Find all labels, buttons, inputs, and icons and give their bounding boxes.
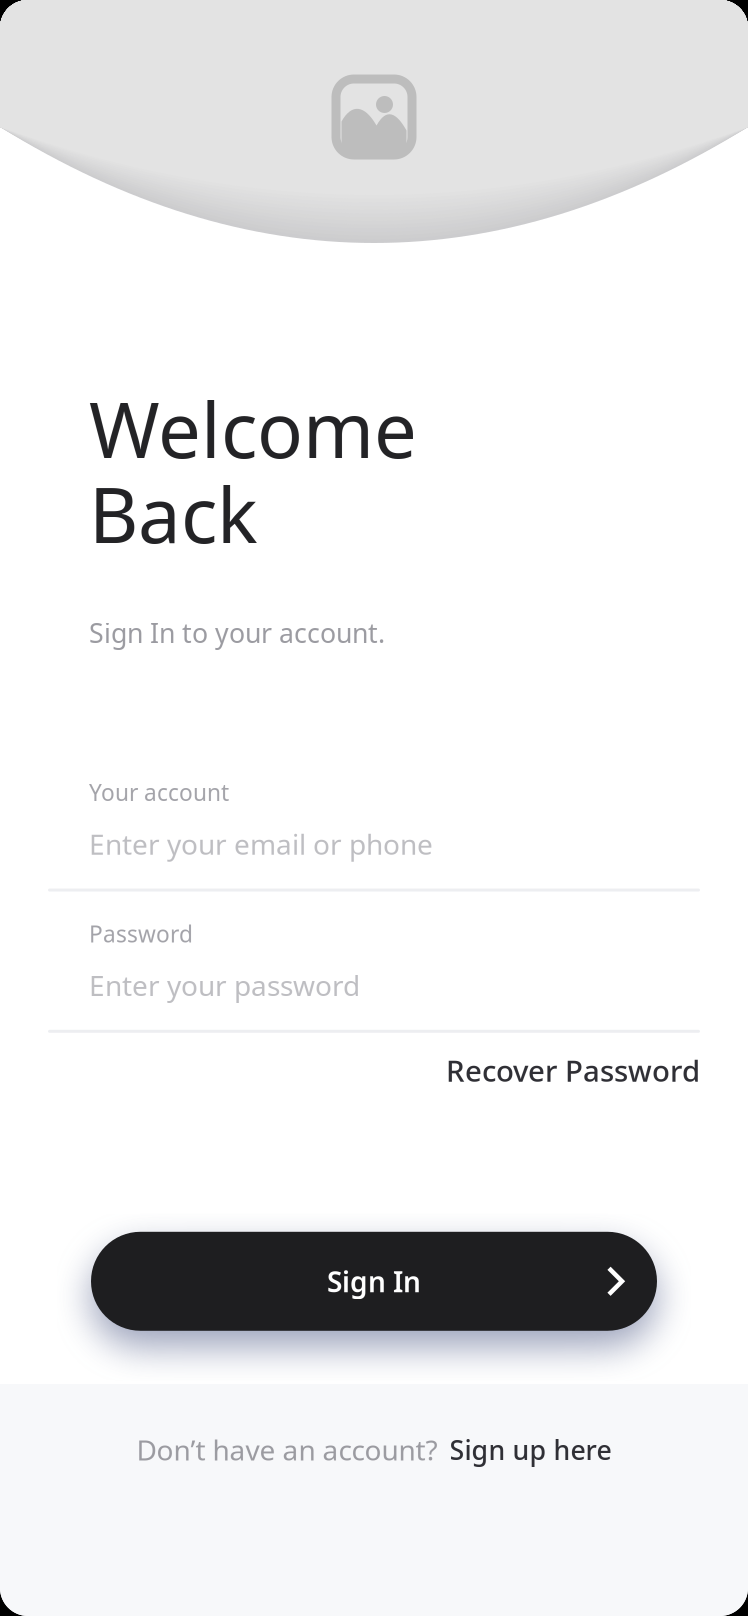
staticText: Back — [89, 463, 258, 564]
staticText: Enter your password — [89, 967, 360, 1004]
staticText: Sign In to your account. — [89, 615, 385, 650]
staticText: Don’t have an account? — [136, 1431, 437, 1468]
staticText: Sign up here — [449, 1432, 611, 1467]
button[interactable]: Sign up here — [449, 1432, 611, 1467]
staticText: Welcome — [89, 378, 417, 479]
staticText: Sign In — [327, 1263, 421, 1300]
button[interactable]: Recover Password — [446, 1051, 700, 1090]
staticText: Enter your email or phone — [89, 825, 433, 863]
staticText: Password — [89, 918, 193, 949]
staticText: Recover Password — [446, 1051, 700, 1090]
staticText: Your account — [89, 777, 229, 807]
button[interactable]: Sign In — [91, 1232, 657, 1331]
